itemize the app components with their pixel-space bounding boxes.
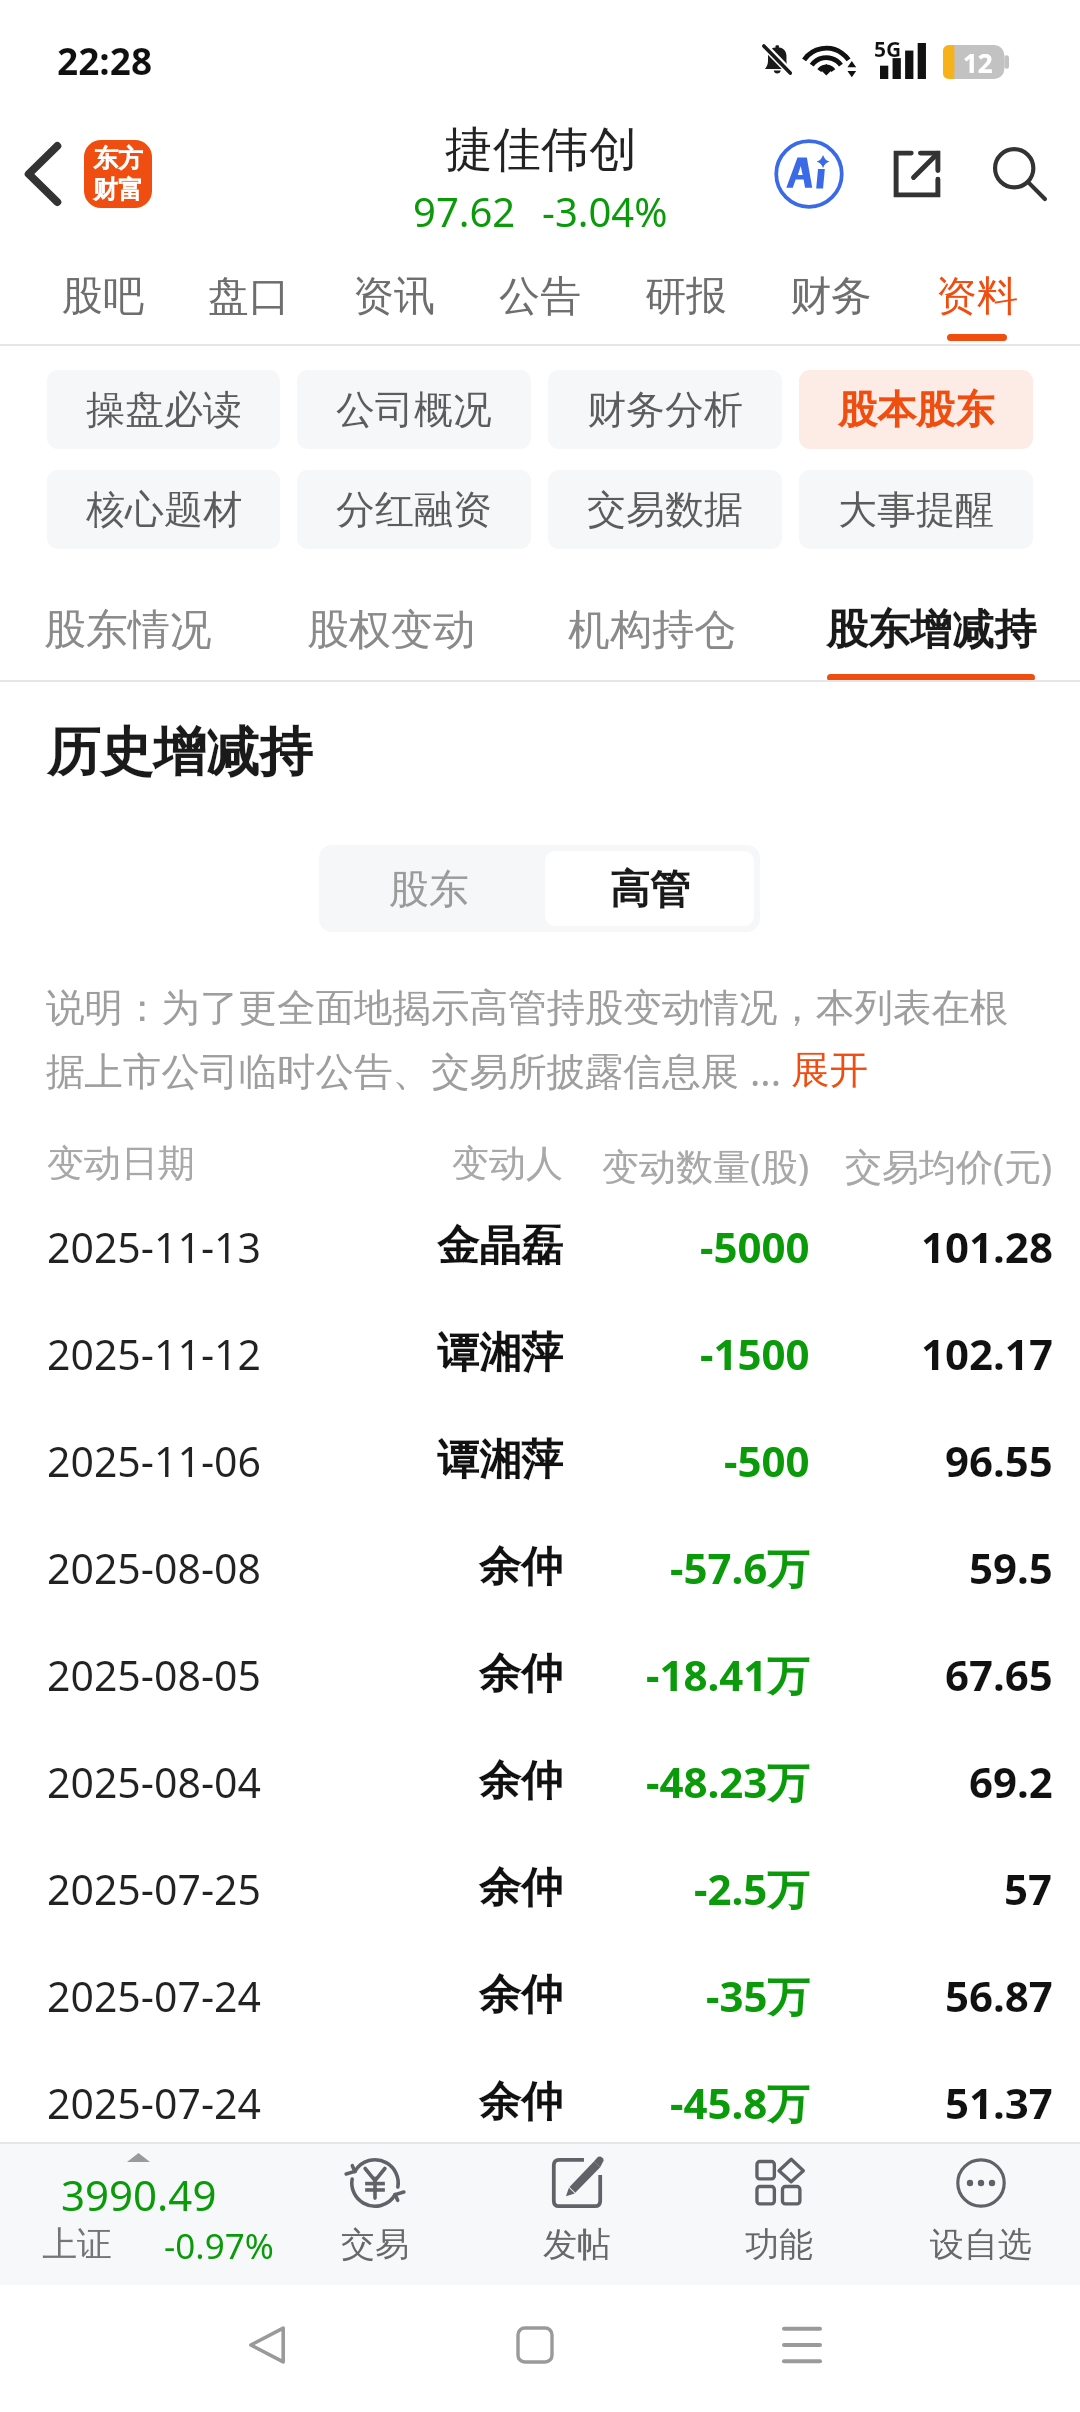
staticText: 功能 — [745, 2223, 813, 2266]
button[interactable]: 股本股东 — [799, 370, 1033, 449]
staticText: 资讯 — [353, 271, 435, 323]
button[interactable]: 股东情况 — [38, 593, 218, 682]
staticText: 高管 — [610, 864, 690, 914]
staticText: 102.17 — [921, 1325, 1053, 1382]
staticText: 余仲 — [479, 2076, 563, 2129]
staticText: 财务分析 — [587, 385, 743, 434]
staticText: 金晶磊 — [437, 1220, 563, 1273]
button[interactable]: Recent apps — [757, 2300, 847, 2390]
staticText: 资料 — [936, 271, 1018, 323]
staticText: -2.5万 — [694, 1860, 810, 1917]
staticText: 96.55 — [945, 1432, 1053, 1489]
staticText: 股东情况 — [44, 604, 212, 657]
staticText: 股本股东 — [838, 385, 994, 434]
staticText: 59.5 — [969, 1539, 1053, 1596]
staticText: 69.2 — [969, 1753, 1053, 1810]
staticText: 交易数据 — [587, 485, 743, 534]
button[interactable]: 财务分析 — [548, 370, 782, 449]
staticText: 变动数量(股) — [602, 1140, 810, 1191]
staticText: 12 — [963, 45, 993, 79]
staticText: -3.04% — [542, 184, 668, 238]
button[interactable]: Back — [8, 139, 78, 209]
button[interactable]: 研报 — [639, 241, 733, 345]
button[interactable]: 股东 — [319, 845, 539, 932]
staticText: 分红融资 — [336, 485, 492, 534]
button[interactable]: 核心题材 — [47, 470, 280, 549]
staticText: 财务 — [790, 271, 872, 323]
staticText: 3990.49 — [61, 2166, 217, 2223]
button[interactable]: 发帖 — [476, 2142, 678, 2285]
staticText: 上证 — [42, 2222, 112, 2266]
button[interactable]: 操盘必读 — [47, 370, 280, 449]
button[interactable]: 展开 — [791, 1046, 868, 1095]
staticText: 余仲 — [479, 1648, 563, 1701]
staticText: 股东 — [389, 864, 469, 914]
button[interactable]: 2025-08-04 — [0, 1728, 1080, 1835]
staticText: -500 — [724, 1432, 810, 1489]
button[interactable]: 盘口 — [202, 241, 296, 345]
staticText: 股权变动 — [307, 604, 475, 657]
button[interactable]: East Money logo — [84, 140, 152, 208]
staticText: -57.6万 — [670, 1539, 810, 1596]
staticText: 谭湘萍 — [437, 1434, 563, 1487]
button[interactable]: 资料 — [930, 241, 1024, 345]
button[interactable]: Home — [490, 2300, 580, 2390]
button[interactable]: AI assistant — [769, 134, 849, 214]
button[interactable]: 股吧 — [56, 241, 150, 345]
staticText: 余仲 — [479, 1969, 563, 2022]
button[interactable]: 公告 — [493, 241, 587, 345]
button[interactable]: 分红融资 — [297, 470, 531, 549]
button[interactable]: 2025-11-13 — [0, 1193, 1080, 1300]
staticText: -45.8万 — [670, 2074, 810, 2131]
button[interactable]: 机构持仓 — [562, 593, 742, 682]
button[interactable]: 2025-08-08 — [0, 1514, 1080, 1621]
staticText: 操盘必读 — [86, 385, 242, 434]
button[interactable]: 高管 — [545, 851, 754, 926]
button[interactable]: 设自选 — [880, 2142, 1080, 2285]
button[interactable]: 2025-11-06 — [0, 1407, 1080, 1514]
button[interactable]: 财务 — [784, 241, 878, 345]
button[interactable]: 2025-07-24 — [0, 1942, 1080, 2049]
staticText: 盘口 — [208, 271, 290, 323]
staticText: 研报 — [645, 271, 727, 323]
button[interactable]: 2025-07-24 — [0, 2049, 1080, 2156]
staticText: 公司概况 — [336, 385, 492, 434]
staticText: -5000 — [700, 1218, 810, 1275]
button[interactable]: 资讯 — [347, 241, 441, 345]
staticText: 余仲 — [479, 1862, 563, 1915]
button[interactable]: 公司概况 — [297, 370, 531, 449]
staticText: 股东增减持 — [826, 604, 1036, 657]
staticText: -0.97% — [164, 2222, 274, 2270]
staticText: 变动日期 — [47, 1140, 195, 1187]
staticText: 2025-08-04 — [47, 1754, 262, 1810]
button[interactable]: Share — [877, 134, 957, 214]
button[interactable]: Back — [222, 2300, 312, 2390]
staticText: 公告 — [499, 271, 581, 323]
staticText: 大事提醒 — [838, 485, 994, 534]
button[interactable]: 3990.49 — [0, 2142, 290, 2285]
button[interactable]: 2025-07-25 — [0, 1835, 1080, 1942]
staticText: 核心题材 — [86, 485, 242, 534]
staticText: 97.62 — [413, 184, 516, 238]
staticText: 股吧 — [62, 271, 144, 323]
staticText: 说明：为了更全面地揭示高管持股变动情况，本列表在根 — [46, 984, 1009, 1033]
button[interactable]: 大事提醒 — [799, 470, 1033, 549]
staticText: 谭湘萍 — [437, 1327, 563, 1380]
button[interactable]: 2025-08-05 — [0, 1621, 1080, 1728]
staticText: 2025-08-08 — [47, 1540, 262, 1596]
staticText: 设自选 — [930, 2223, 1032, 2266]
staticText: 2025-11-13 — [47, 1219, 262, 1275]
staticText: -18.41万 — [646, 1646, 810, 1703]
staticText: 56.87 — [945, 1967, 1053, 2024]
button[interactable]: Search — [980, 134, 1060, 214]
staticText: 5G — [874, 35, 902, 64]
staticText: 展开 — [791, 1046, 868, 1095]
staticText: 财富 — [93, 174, 143, 205]
button[interactable]: 股东增减持 — [825, 593, 1037, 682]
button[interactable]: 功能 — [678, 2142, 880, 2285]
staticText: -1500 — [700, 1325, 810, 1382]
button[interactable]: 股权变动 — [301, 593, 481, 682]
button[interactable]: 交易 — [274, 2142, 476, 2285]
button[interactable]: 2025-11-12 — [0, 1300, 1080, 1407]
button[interactable]: 交易数据 — [548, 470, 782, 549]
